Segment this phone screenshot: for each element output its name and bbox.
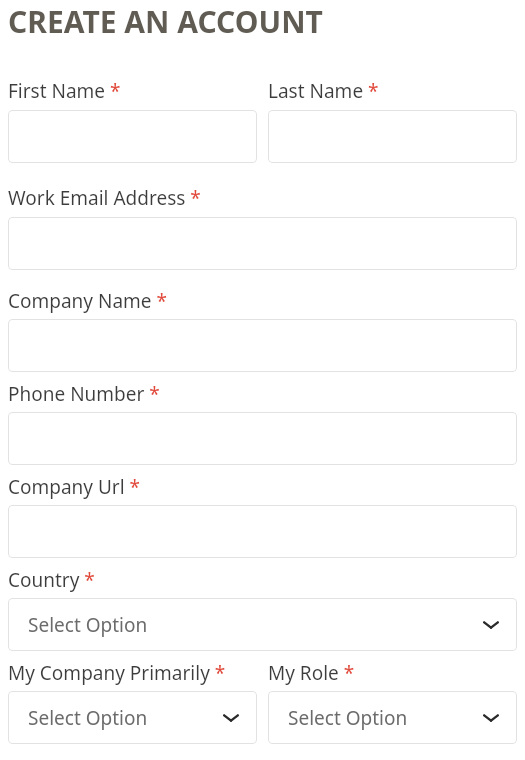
button[interactable] <box>268 110 517 163</box>
staticText: CREATE AN ACCOUNT <box>8 1 323 42</box>
staticText: My Company Primarily * <box>8 660 226 686</box>
staticText: Company Name * <box>8 288 167 314</box>
button[interactable] <box>8 319 517 372</box>
button[interactable] <box>8 217 517 270</box>
staticText: Last Name * <box>268 78 379 104</box>
staticText: Company Url * <box>8 474 141 500</box>
staticText: First Name * <box>8 78 121 104</box>
button[interactable]: Select Option dropdown <box>8 691 257 744</box>
button[interactable]: Select Option dropdown <box>8 598 517 651</box>
button[interactable] <box>8 412 517 465</box>
staticText: Work Email Address * <box>8 185 201 211</box>
staticText: Select Option <box>28 612 148 638</box>
staticText: Country * <box>8 567 95 593</box>
button[interactable] <box>8 110 257 163</box>
staticText: Select Option <box>28 705 148 731</box>
staticText: Phone Number * <box>8 381 160 407</box>
button[interactable] <box>8 505 517 558</box>
button[interactable]: Select Option dropdown <box>268 691 517 744</box>
staticText: My Role * <box>268 660 355 686</box>
staticText: Select Option <box>288 705 408 731</box>
